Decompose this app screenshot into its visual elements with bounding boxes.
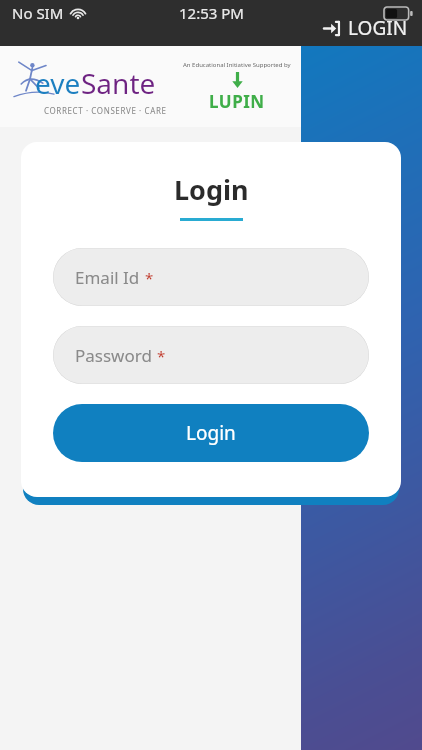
- button[interactable]: Email Id: [53, 248, 369, 306]
- other: Login: [324, 21, 341, 36]
- button[interactable]: Login: [322, 13, 410, 43]
- button[interactable]: Login: [53, 404, 369, 462]
- staticText: Password: [75, 344, 152, 367]
- staticText: LUPIN: [209, 90, 265, 113]
- staticText: LOGIN: [348, 15, 408, 41]
- staticText: eve: [35, 64, 81, 102]
- staticText: *: [157, 346, 166, 366]
- staticText: Login: [174, 171, 249, 208]
- staticText: *: [145, 268, 154, 288]
- staticText: Email Id: [75, 266, 140, 289]
- staticText: An Educational Initiative Supported by: [183, 61, 291, 69]
- staticText: Login: [186, 420, 236, 446]
- staticText: Sante: [81, 64, 156, 102]
- staticText: 12:53 PM: [179, 3, 244, 23]
- staticText: CORRECT · CONSERVE · CARE: [44, 105, 167, 116]
- staticText: No SIM: [12, 3, 64, 23]
- button[interactable]: Password: [53, 326, 369, 384]
